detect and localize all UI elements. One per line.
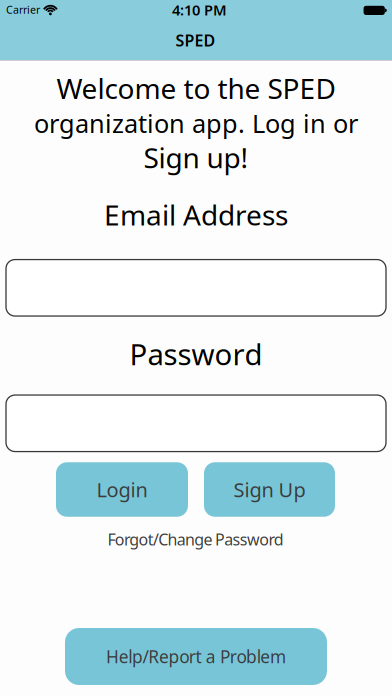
staticText: Email Address — [104, 196, 288, 233]
staticText: Help/Report a Problem — [106, 645, 286, 668]
staticText: Welcome to the SPED — [56, 70, 335, 107]
button[interactable]: Forgot/Change Password — [107, 529, 284, 550]
button[interactable]: Login — [56, 462, 188, 517]
staticText: Carrier — [6, 2, 40, 17]
staticText: Login — [96, 476, 147, 503]
button[interactable]: Sign Up — [204, 462, 335, 517]
staticText: Sign Up — [233, 476, 305, 503]
button[interactable]: Email Address — [6, 260, 386, 316]
staticText: Forgot/Change Password — [107, 529, 284, 550]
staticText: Password — [129, 334, 262, 373]
staticText: organization app. Log in or — [34, 106, 358, 140]
staticText: 4:10 PM — [172, 0, 227, 20]
staticText: Sign up! — [143, 139, 248, 176]
button[interactable]: Password — [6, 395, 386, 452]
staticText: SPED — [175, 30, 215, 51]
button[interactable]: Help/Report a Problem — [65, 628, 327, 685]
